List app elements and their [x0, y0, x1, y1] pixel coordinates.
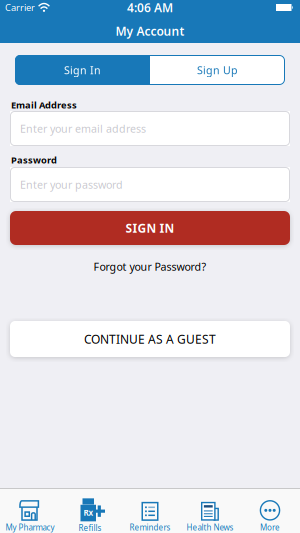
staticText: SIGN IN — [125, 220, 174, 236]
staticText: Enter your email address — [20, 121, 146, 136]
staticText: Reminders — [129, 522, 170, 533]
staticText: Sign In — [64, 63, 101, 77]
staticText: 4:06 AM — [127, 0, 173, 15]
staticText: More — [260, 522, 280, 533]
staticText: Health News — [186, 522, 233, 533]
staticText: My Account — [115, 23, 184, 39]
staticText: Forgot your Password? — [93, 259, 206, 274]
staticText: Email Address — [11, 99, 77, 111]
staticText: Rx — [83, 507, 93, 518]
button[interactable]: SIGN IN — [10, 211, 290, 245]
staticText: Carrier — [5, 1, 35, 14]
button[interactable]: Forgot your Password? — [93, 260, 206, 273]
staticText: Password — [11, 154, 57, 166]
button[interactable]: My Pharmacy — [0, 489, 60, 533]
button[interactable]: Refills — [60, 489, 120, 533]
staticText: Refills — [78, 522, 101, 533]
button[interactable]: Sign In — [15, 55, 150, 85]
button[interactable]: Health News — [180, 489, 240, 533]
staticText: My Pharmacy — [5, 522, 54, 533]
button[interactable]: More — [240, 489, 300, 533]
staticText: Enter your password — [20, 177, 123, 192]
button[interactable]: Sign Up — [150, 55, 285, 85]
staticText: Sign Up — [197, 63, 238, 77]
staticText: CONTINUE AS A GUEST — [84, 331, 216, 347]
button[interactable]: Reminders — [120, 489, 180, 533]
button[interactable]: CONTINUE AS A GUEST — [10, 321, 290, 357]
